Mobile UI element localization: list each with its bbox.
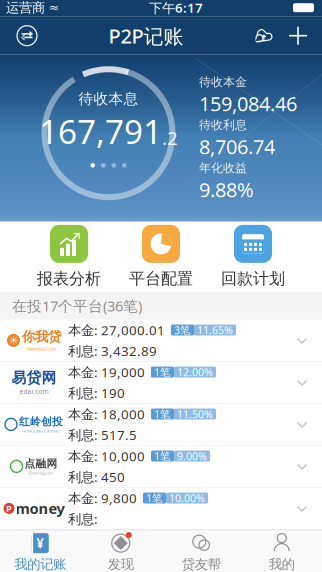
staticText: ≈	[45, 1, 59, 14]
staticText: 利息: 450	[68, 468, 125, 486]
staticText: 在投17个平台(36笔)	[12, 296, 142, 315]
staticText: money	[15, 499, 64, 518]
button[interactable]: 回款计划	[207, 225, 299, 289]
staticText: ✳	[8, 334, 18, 347]
button[interactable]: 添加	[282, 26, 314, 46]
staticText: 待收本金	[199, 75, 247, 89]
staticText: ¥	[36, 534, 44, 552]
staticText: 1笔	[154, 407, 171, 421]
staticText: 11.50%	[177, 407, 213, 421]
staticText: 待收利息	[199, 118, 247, 132]
staticText: 回款计划	[221, 269, 285, 289]
staticText: 9.88%	[199, 176, 254, 203]
staticText: 我的	[269, 556, 295, 572]
staticText: 运营商	[6, 0, 45, 16]
staticText: 9.00%	[177, 449, 207, 463]
staticText: 我的记账	[14, 556, 66, 572]
button[interactable]: 切换账本	[8, 25, 46, 47]
button[interactable]: P	[0, 488, 322, 530]
staticText: .2	[162, 125, 178, 150]
staticText: 下午6:17	[149, 0, 203, 16]
staticText: 1笔	[154, 449, 171, 463]
staticText: 待收本息	[78, 90, 138, 108]
staticText: 本金: 10,000	[68, 447, 145, 465]
staticText: HONGLING CAPITAL	[22, 428, 60, 434]
staticText: 167,791	[39, 109, 162, 153]
staticText: 159,084.46	[199, 90, 297, 117]
button[interactable]: ¥	[0, 528, 80, 572]
staticText: 11.65%	[197, 323, 233, 337]
staticText: 年化收益	[199, 161, 247, 175]
button[interactable]: 报表分析	[23, 225, 115, 289]
button[interactable]: 易贷网	[0, 362, 322, 404]
staticText: 报表分析	[37, 269, 101, 289]
button[interactable]: 我的	[241, 528, 322, 572]
button[interactable]: 发现	[80, 528, 161, 572]
button[interactable]: 平台配置	[115, 225, 207, 289]
staticText: Dianrong.com	[28, 470, 53, 476]
staticText: 1笔	[154, 365, 171, 379]
staticText: 利息: 517.5	[68, 426, 137, 444]
button[interactable]: 红岭创投	[0, 404, 322, 446]
staticText: 8,706.74	[199, 133, 275, 160]
button[interactable]: 点融网	[0, 446, 322, 488]
staticText: niwodai.com	[26, 345, 56, 352]
staticText: 贷友帮	[182, 556, 221, 572]
staticText: 3笔	[174, 323, 191, 337]
staticText: 本金: 27,000.01	[68, 321, 165, 339]
staticText: 平台配置	[129, 269, 193, 289]
staticText: 10.00%	[169, 491, 205, 505]
staticText: 发现	[108, 556, 134, 572]
staticText: 本金: 18,000	[68, 405, 145, 423]
staticText: 利息:	[68, 510, 101, 528]
staticText: 点融网	[24, 457, 57, 470]
staticText: 易贷网	[11, 369, 56, 387]
staticText: 1笔	[146, 491, 163, 505]
button[interactable]: ✳	[0, 320, 322, 362]
staticText: 利息: 3,432.89	[68, 342, 157, 360]
staticText: 利息: 190	[68, 384, 125, 402]
staticText: 红岭创投	[19, 415, 63, 428]
staticText: edai.com	[19, 387, 48, 396]
staticText: 本金: 9,800	[68, 489, 137, 507]
staticText: P2P记账	[108, 22, 183, 49]
button[interactable]: 云备份	[246, 25, 282, 47]
button[interactable]: 贷友帮	[161, 528, 241, 572]
staticText: 你我贷	[22, 329, 61, 345]
staticText: 12.00%	[177, 365, 213, 379]
staticText: 本金: 19,000	[68, 363, 145, 381]
staticText: P	[6, 502, 12, 515]
